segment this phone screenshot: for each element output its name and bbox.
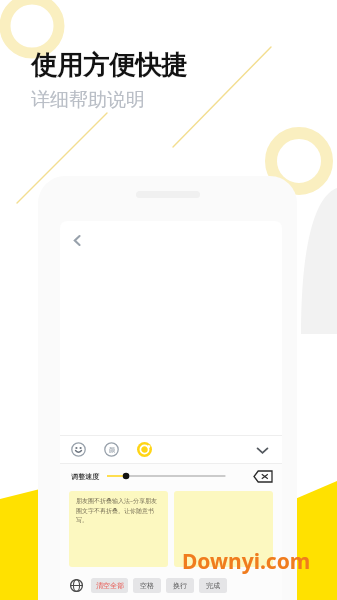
button[interactable]: 清空全部	[91, 578, 128, 593]
staticText: 空格	[140, 581, 154, 590]
button[interactable]: Switch language	[68, 577, 85, 594]
staticText: 使用方便快捷	[31, 49, 187, 82]
button[interactable]: 完成	[199, 578, 227, 593]
button[interactable]	[174, 491, 273, 567]
staticText: 换行	[173, 581, 187, 590]
staticText: 调整速度	[71, 472, 99, 481]
staticText: Downyi.com	[182, 547, 311, 576]
button[interactable]: Adjust speed	[107, 469, 248, 483]
staticText: 颜	[109, 446, 115, 454]
button[interactable]: Backspace	[253, 470, 273, 483]
staticText: 完成	[206, 581, 220, 590]
button[interactable]: Collapse keyboard	[252, 440, 272, 460]
button[interactable]: 空格	[133, 578, 161, 593]
button[interactable]: 换行	[166, 578, 194, 593]
button[interactable]: Font colour	[104, 442, 119, 457]
button[interactable]: Speed	[137, 442, 152, 457]
staticText: 详细帮助说明	[31, 88, 145, 112]
staticText: 清空全部	[96, 581, 124, 590]
button[interactable]: Emoji	[71, 442, 86, 457]
button[interactable]: 朋友圈不折叠输入法–分享朋友圈文字不再折叠。让你随意书写。	[69, 491, 168, 567]
staticText: 朋友圈不折叠输入法–分享朋友圈文字不再折叠。让你随意书写。	[76, 497, 162, 524]
button[interactable]: Back	[69, 232, 86, 249]
